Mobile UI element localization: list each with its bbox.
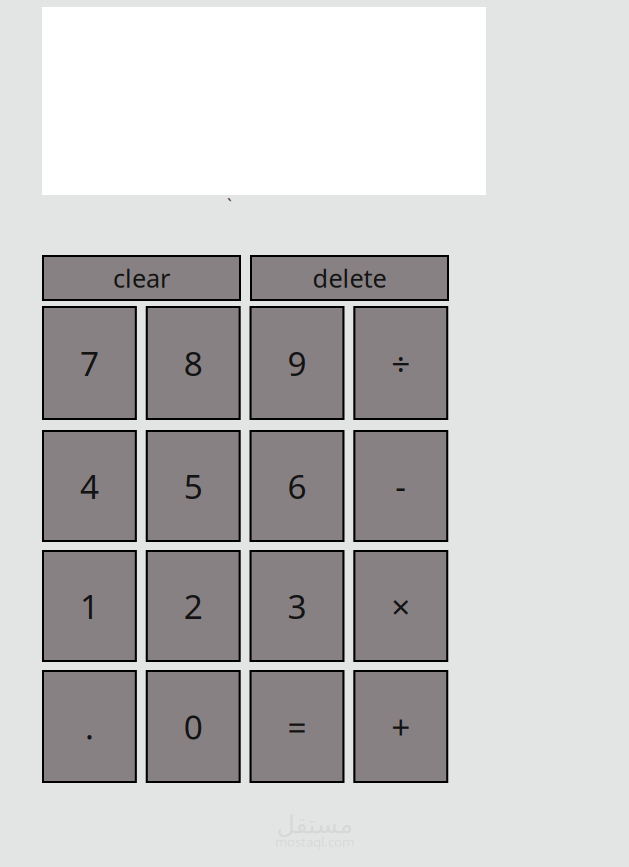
staticText: 1 bbox=[80, 584, 99, 628]
button[interactable]: minus bbox=[353, 430, 448, 542]
staticText: 4 bbox=[80, 464, 99, 508]
button[interactable]: 8 bbox=[146, 306, 241, 420]
button[interactable]: multiply bbox=[353, 550, 448, 662]
staticText: mostaql.com bbox=[275, 833, 354, 850]
staticText: = bbox=[287, 704, 306, 749]
button[interactable]: 4 bbox=[42, 430, 137, 542]
button[interactable]: 2 bbox=[146, 550, 241, 662]
staticText: + bbox=[391, 704, 410, 749]
button[interactable]: plus bbox=[353, 670, 448, 783]
button[interactable]: equals bbox=[250, 670, 344, 783]
button[interactable]: 0 bbox=[146, 670, 241, 783]
button[interactable]: 9 bbox=[250, 306, 344, 420]
staticText: 8 bbox=[184, 341, 203, 385]
staticText: ` bbox=[227, 194, 232, 217]
staticText: 9 bbox=[287, 341, 306, 385]
staticText: مستقل bbox=[276, 810, 353, 839]
staticText: ÷ bbox=[391, 341, 410, 385]
button[interactable]: 5 bbox=[146, 430, 241, 542]
button[interactable]: clear bbox=[42, 255, 241, 301]
staticText: . bbox=[85, 704, 94, 749]
button[interactable]: 3 bbox=[250, 550, 344, 662]
button[interactable]: decimal point bbox=[42, 670, 137, 783]
staticText: delete bbox=[312, 261, 386, 295]
button[interactable]: 7 bbox=[42, 306, 137, 420]
staticText: × bbox=[391, 584, 410, 628]
staticText: - bbox=[395, 464, 406, 508]
button[interactable]: 1 bbox=[42, 550, 137, 662]
staticText: 2 bbox=[184, 584, 203, 628]
staticText: 5 bbox=[184, 464, 203, 508]
button[interactable]: 6 bbox=[250, 430, 344, 542]
staticText: clear bbox=[113, 261, 170, 295]
staticText: 3 bbox=[287, 584, 306, 628]
staticText: 7 bbox=[80, 341, 99, 385]
button[interactable]: divide bbox=[353, 306, 448, 420]
button[interactable]: delete bbox=[250, 255, 449, 301]
staticText: 0 bbox=[184, 704, 203, 749]
staticText: 6 bbox=[287, 464, 306, 508]
